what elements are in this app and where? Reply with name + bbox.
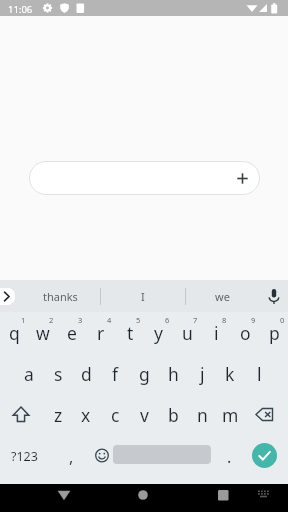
staticText: r [97, 321, 105, 345]
staticText: I [141, 289, 145, 304]
staticText: d [81, 362, 92, 386]
staticText: 9 [251, 315, 256, 325]
staticText: . [227, 446, 232, 468]
button[interactable]: g [130, 354, 158, 394]
button[interactable]: c [101, 395, 129, 435]
button[interactable] [262, 284, 286, 308]
button[interactable] [234, 170, 251, 187]
staticText: p [269, 321, 280, 345]
button[interactable] [246, 394, 284, 435]
staticText: 11:06 [8, 3, 33, 16]
staticText: j [200, 362, 205, 386]
staticText: x [81, 403, 91, 427]
button[interactable]: l [245, 354, 273, 394]
button[interactable] [0, 288, 15, 305]
button[interactable] [4, 394, 40, 435]
staticText: 5 [136, 315, 141, 325]
staticText: m [222, 403, 239, 427]
staticText: 3 [78, 315, 83, 325]
staticText: y [154, 321, 163, 345]
button[interactable]: d [72, 354, 100, 394]
button[interactable]: q [0, 313, 28, 353]
staticText: s [54, 362, 63, 386]
button[interactable]: b [159, 395, 187, 435]
button[interactable] [252, 484, 276, 508]
button[interactable]: i [202, 313, 230, 353]
staticText: v [140, 403, 149, 427]
staticText: g [139, 362, 150, 386]
button[interactable]: h [159, 354, 187, 394]
button[interactable]: y [144, 313, 172, 353]
button[interactable]: v [130, 395, 158, 435]
staticText: k [225, 362, 235, 386]
staticText: 0 [280, 315, 285, 325]
staticText: o [240, 321, 251, 345]
button[interactable]: thanks [25, 280, 95, 312]
button[interactable] [129, 484, 157, 512]
button[interactable] [252, 443, 277, 468]
staticText: w [36, 321, 50, 345]
button[interactable]: t [116, 313, 144, 353]
staticText: 2 [49, 315, 54, 325]
staticText: e [67, 321, 77, 345]
button[interactable]: z [44, 395, 72, 435]
button[interactable]: I [108, 280, 178, 312]
staticText: t [127, 321, 134, 345]
staticText: c [111, 403, 120, 427]
staticText: thanks [43, 289, 78, 304]
button[interactable]: ?123 [2, 436, 46, 476]
staticText: , [69, 446, 74, 468]
button[interactable] [29, 161, 260, 195]
staticText: 7 [193, 315, 198, 325]
staticText: 1 [21, 315, 26, 325]
staticText: a [24, 362, 34, 386]
button[interactable]: s [44, 354, 72, 394]
button[interactable] [209, 484, 237, 512]
button[interactable]: . [217, 437, 241, 477]
staticText: l [257, 362, 262, 386]
button[interactable]: p [260, 313, 288, 353]
staticText: q [9, 321, 20, 345]
button[interactable]: f [101, 354, 129, 394]
button[interactable]: e [58, 313, 86, 353]
staticText: 6 [165, 315, 170, 325]
staticText: z [54, 403, 63, 427]
button[interactable]: u [173, 313, 201, 353]
button[interactable]: n [188, 395, 216, 435]
button[interactable]: , [59, 437, 83, 477]
staticText: n [197, 403, 208, 427]
staticText: f [112, 362, 119, 386]
button[interactable]: k [216, 354, 244, 394]
button[interactable] [88, 441, 116, 469]
button[interactable]: we [192, 280, 252, 312]
button[interactable]: r [87, 313, 115, 353]
staticText: we [215, 289, 230, 304]
staticText: b [168, 403, 179, 427]
button[interactable]: x [72, 395, 100, 435]
button[interactable]: j [188, 354, 216, 394]
button[interactable]: o [231, 313, 259, 353]
staticText: h [168, 362, 179, 386]
staticText: ?123 [11, 448, 38, 465]
staticText: 8 [222, 315, 227, 325]
staticText: 4 [107, 315, 112, 325]
button[interactable]: a [15, 354, 43, 394]
button[interactable]: w [29, 313, 57, 353]
staticText: i [214, 321, 219, 345]
staticText: u [182, 321, 193, 345]
button[interactable]: m [216, 395, 244, 435]
button[interactable] [50, 484, 78, 512]
